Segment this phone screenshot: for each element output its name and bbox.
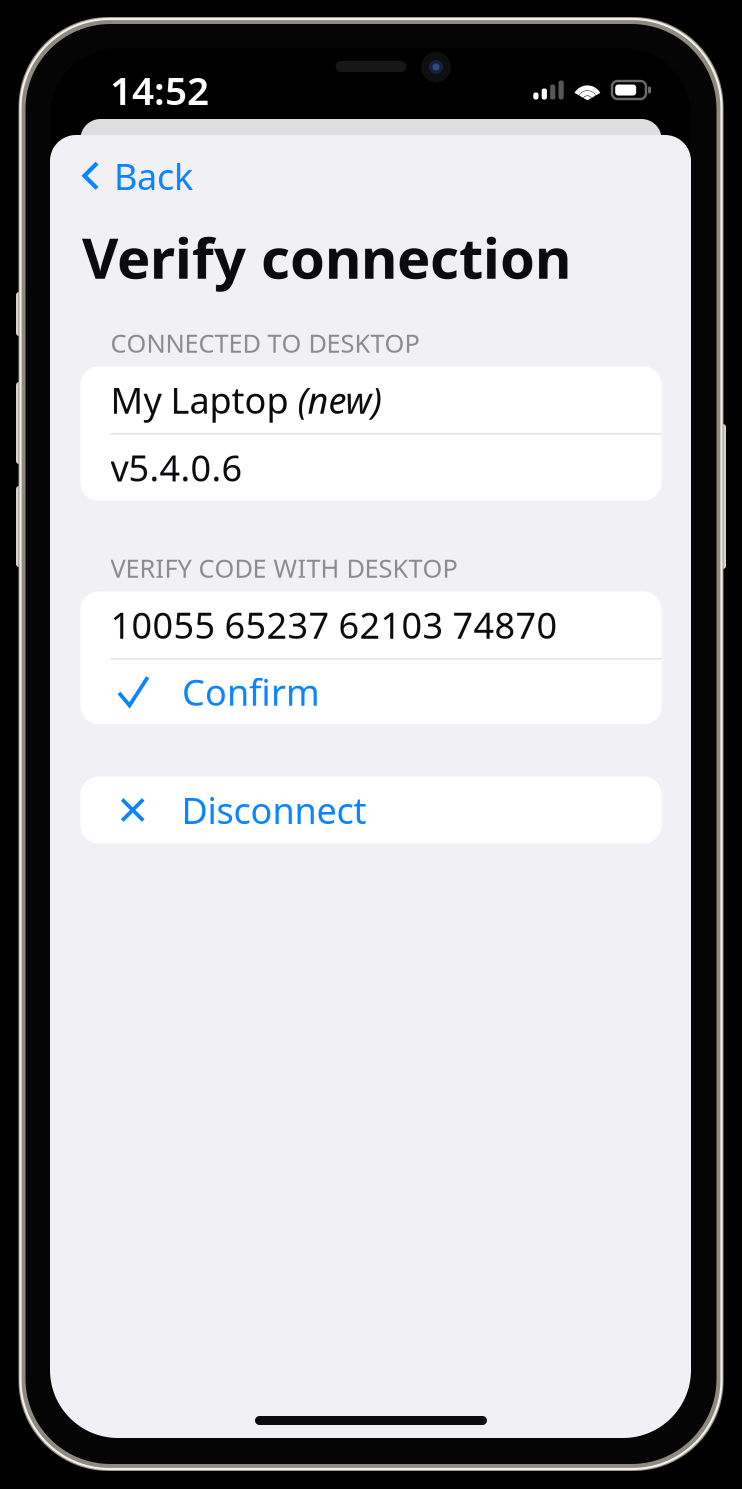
button[interactable]: Confirm (80, 660, 661, 724)
staticText: CONNECTED TO DESKTOP (110, 326, 419, 360)
button[interactable]: Disconnect (80, 776, 661, 843)
staticText: Disconnect (181, 786, 366, 834)
staticText: VERIFY CODE WITH DESKTOP (110, 551, 457, 585)
staticText: (new) (297, 376, 381, 424)
staticText: 14:52 (110, 64, 209, 116)
staticText: 10055 65237 62103 74870 (110, 601, 557, 649)
staticText: v5.4.0.6 (110, 444, 242, 491)
staticText: Back (114, 152, 193, 200)
staticText: My Laptop (110, 376, 297, 424)
staticText: Verify connection (82, 220, 571, 294)
button[interactable]: Back (82, 150, 267, 202)
staticText: Confirm (182, 668, 320, 716)
